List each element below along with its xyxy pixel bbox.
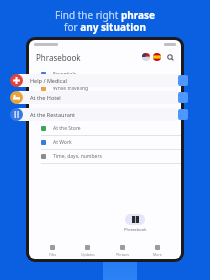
staticText: Help / Medical bbox=[30, 77, 67, 84]
staticText: More bbox=[153, 252, 162, 257]
button[interactable]: Updates bbox=[70, 245, 105, 257]
button[interactable]: More bbox=[140, 245, 175, 257]
staticText: Time, days, numbers bbox=[53, 153, 102, 160]
button[interactable]: At the Restaurant bbox=[9, 108, 188, 121]
staticText: Phrasebook bbox=[124, 227, 147, 232]
staticText: Updates bbox=[81, 252, 95, 257]
staticText: Phrases bbox=[116, 252, 129, 257]
button[interactable]: Phrasebook app bbox=[125, 214, 145, 225]
button[interactable]: Time, days, numbers bbox=[29, 150, 181, 163]
staticText: Essentials bbox=[53, 71, 77, 78]
button[interactable]: At the Store bbox=[29, 122, 181, 135]
staticText: Phrasebook bbox=[36, 52, 81, 63]
button[interactable]: At Work bbox=[29, 136, 181, 149]
staticText: At the Restaurant bbox=[30, 111, 76, 118]
staticText: At the Hotel bbox=[30, 94, 61, 101]
staticText: Find the right phrase for any situation bbox=[0, 8, 210, 34]
button[interactable]: Help / Medical bbox=[9, 74, 188, 87]
staticText: At the Store bbox=[53, 125, 81, 132]
button[interactable]: Target language bbox=[153, 53, 161, 61]
staticText: At Work bbox=[53, 139, 72, 146]
button[interactable]: Source language bbox=[142, 53, 150, 61]
staticText: Files bbox=[49, 252, 57, 257]
button[interactable]: At the Hotel bbox=[9, 91, 188, 104]
button[interactable]: Phrases bbox=[105, 245, 140, 257]
button[interactable]: Essentials bbox=[29, 68, 181, 81]
button[interactable]: Files bbox=[35, 245, 70, 257]
staticText: While traveling bbox=[53, 85, 89, 92]
button[interactable]: While traveling bbox=[29, 82, 181, 95]
button[interactable]: Search bbox=[165, 52, 175, 62]
